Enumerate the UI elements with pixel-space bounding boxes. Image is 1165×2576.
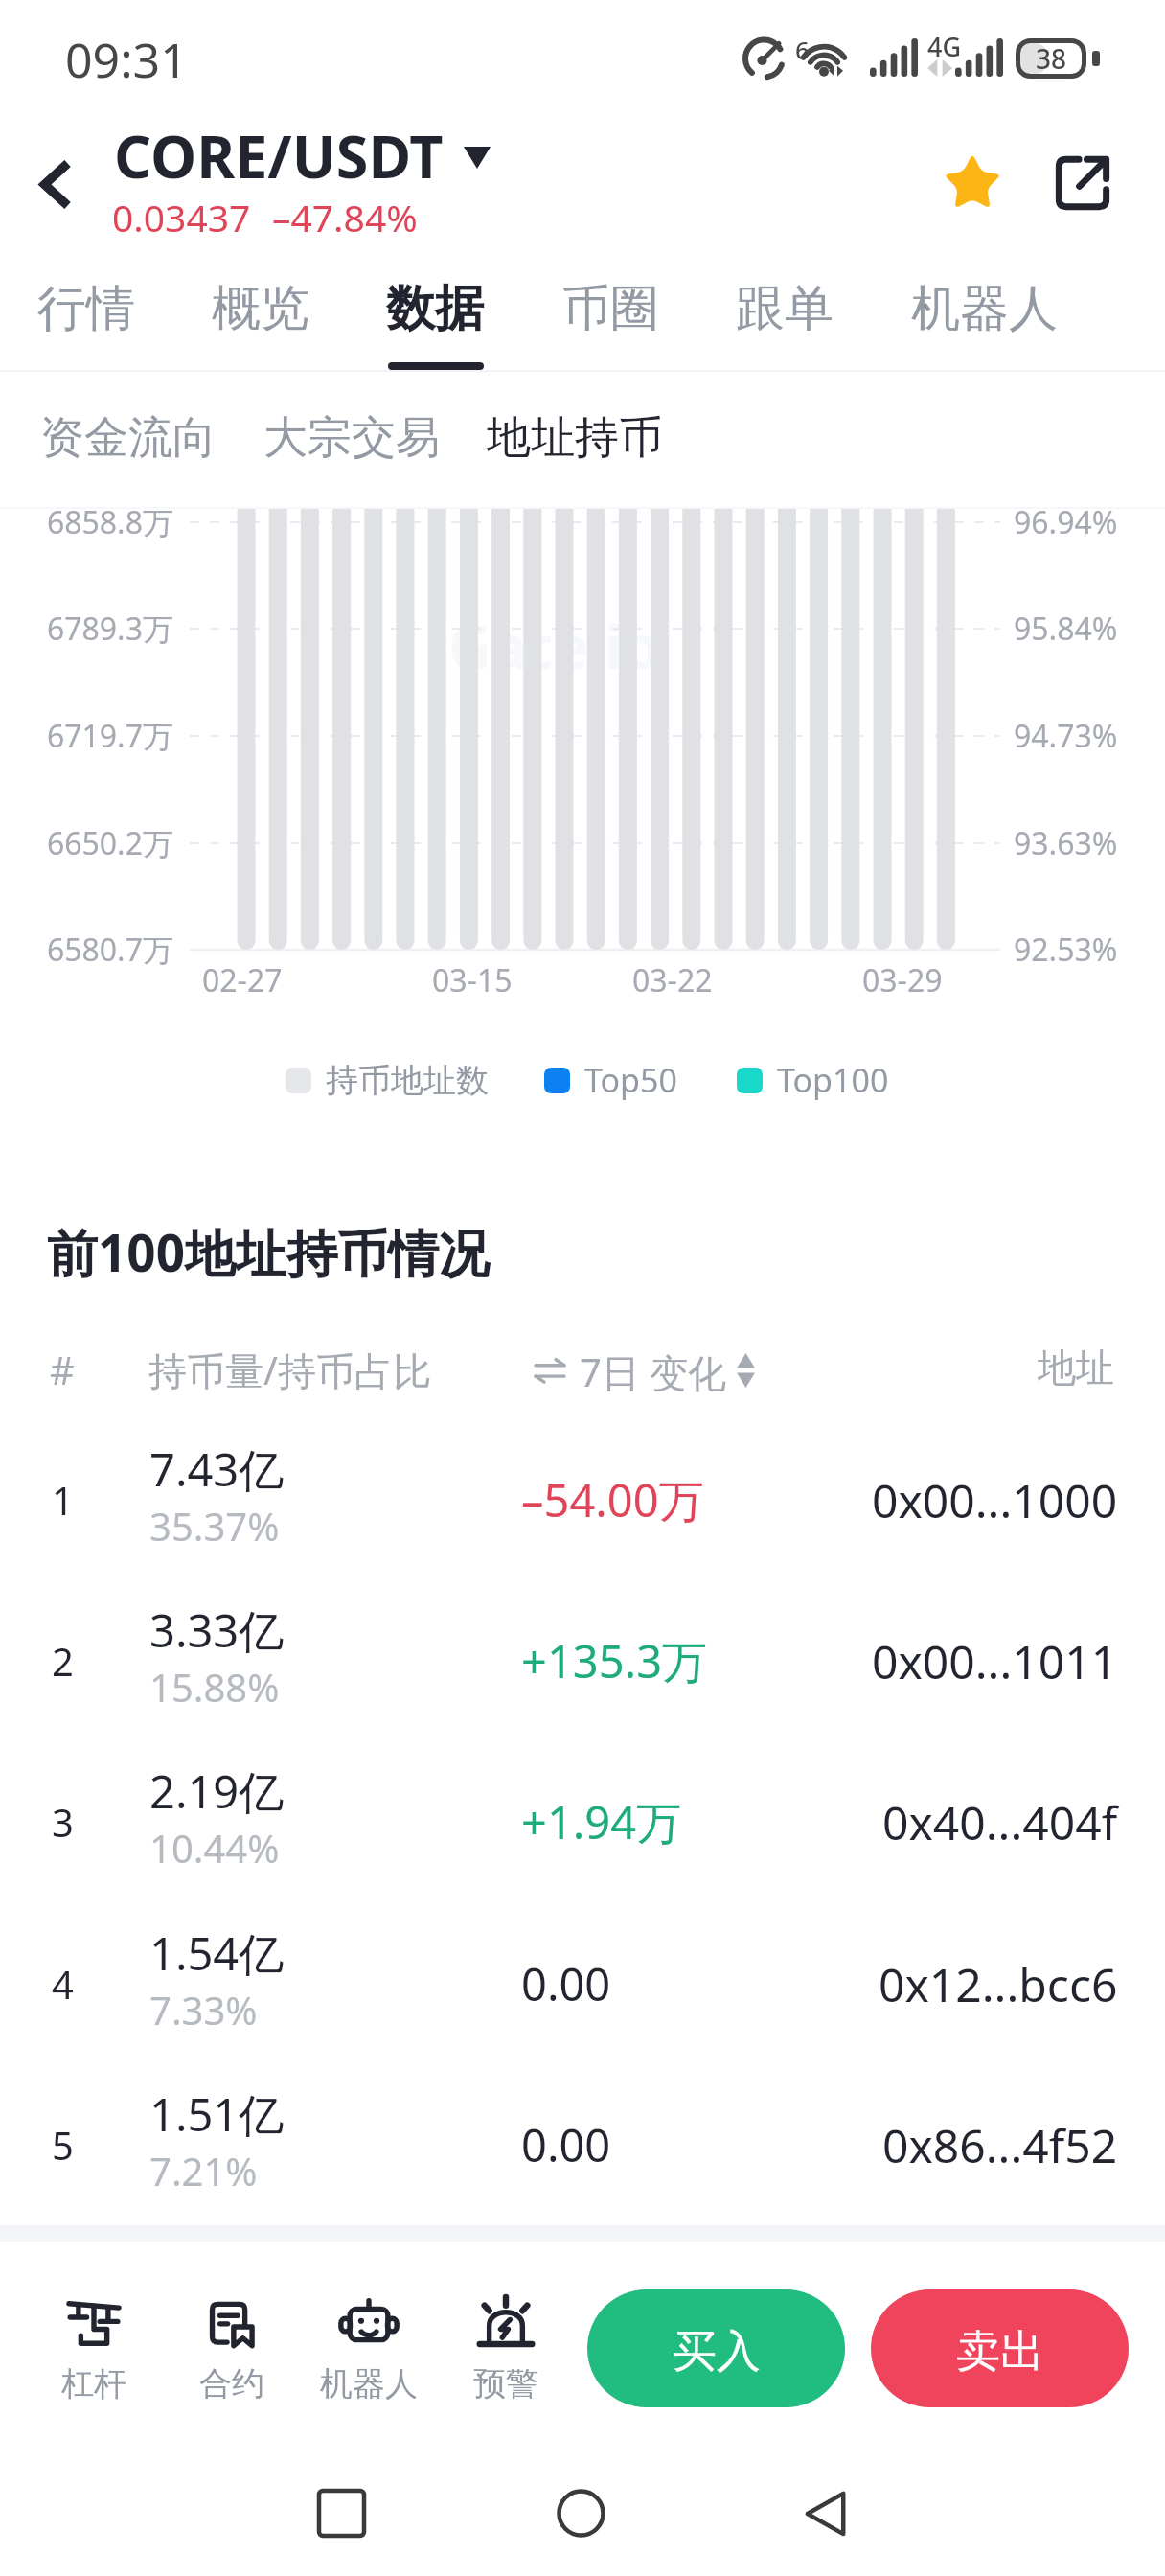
button[interactable]: 3 <box>0 1743 1165 1904</box>
button[interactable]: 2 <box>0 1582 1165 1743</box>
button[interactable]: 持币地址数 <box>286 1060 489 1101</box>
staticText: 10.44% <box>149 1822 280 1874</box>
staticText: CORE/USDT <box>114 116 444 195</box>
button[interactable]: 机器人 <box>309 2292 428 2404</box>
staticText: 4G <box>927 29 962 64</box>
staticText: 1.54亿 <box>149 1922 285 1984</box>
staticText: 02-27 <box>202 959 283 1001</box>
staticText: Gate.io <box>448 606 660 686</box>
button[interactable]: Top100 <box>737 1058 889 1102</box>
button[interactable]: Share <box>1041 142 1124 224</box>
staticText: 0.03437 <box>112 192 251 242</box>
staticText: 96.94% <box>1014 501 1118 543</box>
staticText: 0x00...1011 <box>872 1630 1118 1692</box>
staticText: 0x40...404f <box>882 1791 1118 1853</box>
staticText: 3.33亿 <box>149 1599 285 1661</box>
staticText: 持币地址数 <box>326 1060 489 1101</box>
button[interactable]: 买入 <box>587 2289 845 2407</box>
staticText: +135.3万 <box>521 1630 708 1691</box>
button[interactable]: 大宗交易 <box>240 397 464 479</box>
button[interactable]: 7日 变化 <box>534 1345 755 1395</box>
button[interactable]: 数据 <box>354 270 516 355</box>
staticText: 6789.3万 <box>46 608 173 650</box>
staticText: 卖出 <box>956 2324 1044 2380</box>
staticText: 92.53% <box>1014 929 1118 971</box>
staticText: 前100地址持币情况 <box>47 1217 490 1286</box>
staticText: 6 <box>795 33 810 66</box>
staticText: 15.88% <box>149 1661 280 1713</box>
staticText: 4 <box>52 1958 74 2010</box>
staticText: Top50 <box>584 1058 677 1102</box>
button[interactable]: 币圈 <box>529 270 692 355</box>
staticText: 概览 <box>212 278 309 339</box>
staticText: +1.94万 <box>521 1791 682 1852</box>
staticText: 7日 变化 <box>580 1345 727 1395</box>
staticText: –54.00万 <box>521 1469 704 1530</box>
staticText: 3 <box>52 1796 74 1848</box>
staticText: 6858.8万 <box>46 501 173 543</box>
staticText: 7.43亿 <box>149 1438 285 1500</box>
staticText: 7.33% <box>149 1984 258 2035</box>
button[interactable]: 4 <box>0 1905 1165 2066</box>
button[interactable]: 卖出 <box>871 2289 1129 2407</box>
staticText: 03-22 <box>632 959 713 1001</box>
staticText: 0x86...4f52 <box>882 2114 1118 2176</box>
staticText: 跟单 <box>736 278 834 339</box>
button[interactable]: 杠杆 <box>34 2292 153 2404</box>
staticText: 持币量/持币占比 <box>148 1344 431 1393</box>
staticText: 资金流向 <box>40 410 217 466</box>
staticText: 03-29 <box>862 959 943 1001</box>
staticText: 数据 <box>386 278 484 339</box>
button[interactable]: Back <box>788 2475 864 2552</box>
button[interactable]: 地址持币 <box>463 397 687 479</box>
staticText: 6719.7万 <box>46 715 173 757</box>
button[interactable]: 预警 <box>446 2292 565 2404</box>
staticText: 93.63% <box>1014 822 1118 864</box>
button[interactable]: 合约 <box>172 2292 291 2404</box>
staticText: 0x00...1000 <box>872 1469 1118 1531</box>
button[interactable]: Favorite <box>931 141 1014 223</box>
staticText: 合约 <box>199 2363 264 2404</box>
staticText: 2.19亿 <box>149 1760 285 1822</box>
button[interactable]: 概览 <box>179 270 342 355</box>
button[interactable]: Recents <box>303 2474 379 2551</box>
button[interactable]: 机器人 <box>902 270 1065 355</box>
staticText: 杠杆 <box>61 2363 126 2404</box>
staticText: 2 <box>52 1635 74 1687</box>
staticText: 0x12...bcc6 <box>879 1953 1118 2015</box>
staticText: 预警 <box>473 2363 538 2404</box>
staticText: 35.37% <box>149 1500 280 1552</box>
staticText: 0.00 <box>521 1953 611 2014</box>
staticText: 1 <box>52 1474 74 1526</box>
staticText: 6650.2万 <box>46 822 173 864</box>
staticText: 1.51亿 <box>149 2083 285 2145</box>
staticText: 5 <box>52 2119 74 2171</box>
staticText: 地址 <box>1038 1344 1114 1391</box>
button[interactable]: 5 <box>0 2066 1165 2227</box>
staticText: Top100 <box>777 1058 889 1102</box>
staticText: 地址持币 <box>487 410 663 466</box>
staticText: 38 <box>1036 40 1067 77</box>
staticText: 行情 <box>37 278 135 339</box>
staticText: 机器人 <box>320 2363 418 2404</box>
staticText: 7.21% <box>149 2145 258 2196</box>
button[interactable]: 资金流向 <box>16 397 240 479</box>
staticText: 94.73% <box>1014 715 1118 757</box>
button[interactable]: 1 <box>0 1421 1165 1582</box>
button[interactable]: 跟单 <box>703 270 866 355</box>
staticText: 币圈 <box>561 278 659 339</box>
staticText: 09:31 <box>65 27 188 92</box>
button[interactable]: Home <box>542 2474 619 2551</box>
button[interactable]: Back <box>16 146 93 222</box>
staticText: # <box>50 1344 75 1393</box>
staticText: –47.84% <box>272 192 418 242</box>
staticText: 大宗交易 <box>263 410 440 466</box>
button[interactable]: Top50 <box>544 1058 677 1102</box>
button[interactable]: 行情 <box>5 270 168 355</box>
staticText: 95.84% <box>1014 608 1118 650</box>
staticText: 买入 <box>673 2324 761 2380</box>
staticText: 03-15 <box>432 959 513 1001</box>
staticText: 机器人 <box>911 278 1058 339</box>
staticText: 6580.7万 <box>46 929 173 971</box>
staticText: 0.00 <box>521 2114 611 2175</box>
